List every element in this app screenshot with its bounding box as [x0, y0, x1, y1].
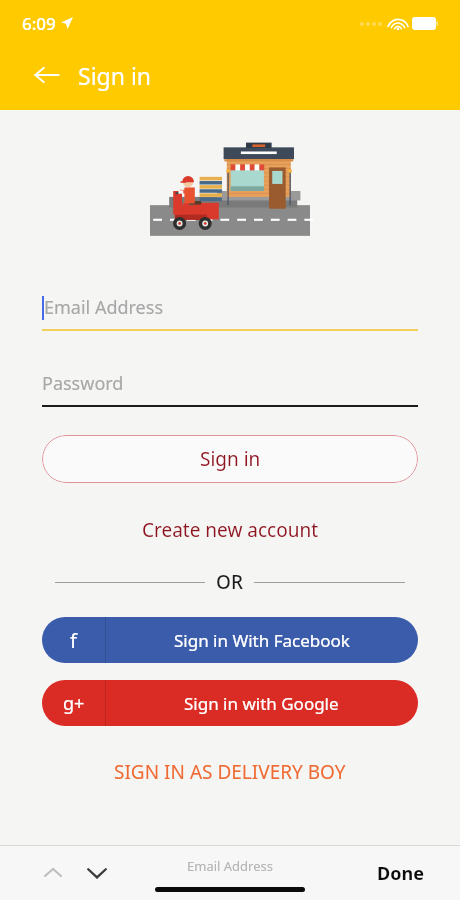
button[interactable]: Back: [30, 58, 64, 92]
staticText: Done: [377, 861, 424, 886]
button[interactable]: Password: [42, 371, 418, 407]
button[interactable]: Email Address: [42, 295, 418, 331]
staticText: Sign in: [200, 446, 261, 472]
button[interactable]: g+: [42, 680, 418, 726]
button[interactable]: Done: [371, 855, 430, 892]
staticText: 6:09: [22, 12, 56, 35]
button[interactable]: f: [42, 617, 418, 663]
staticText: Sign in with Google: [184, 692, 339, 715]
button[interactable]: SIGN IN AS DELIVERY BOY: [102, 754, 358, 790]
staticText: Create new account: [142, 517, 319, 543]
button[interactable]: Previous field: [38, 858, 68, 888]
staticText: g+: [63, 691, 85, 716]
staticText: SIGN IN AS DELIVERY BOY: [114, 759, 346, 785]
staticText: OR: [216, 569, 243, 595]
staticText: Email Address: [187, 857, 273, 875]
staticText: Sign in With Facebook: [174, 629, 350, 652]
staticText: f: [70, 627, 77, 654]
staticText: Email Address: [44, 295, 164, 320]
button[interactable]: Sign in: [42, 435, 418, 483]
staticText: Sign in: [78, 60, 152, 91]
button[interactable]: Create new account: [130, 513, 331, 547]
button[interactable]: Next field: [82, 858, 112, 888]
staticText: Password: [42, 371, 124, 396]
